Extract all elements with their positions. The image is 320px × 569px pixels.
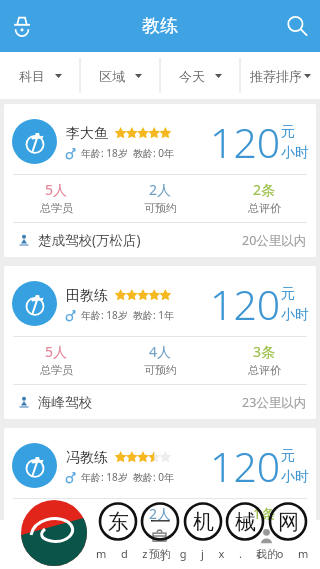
staticText: 总学员 [40, 201, 73, 215]
button[interactable]: 推荐排序 [240, 52, 320, 99]
staticText: 年龄: 18岁 教龄: 1年 [81, 308, 174, 322]
staticText: 总评价 [248, 525, 281, 539]
staticText: 120 [210, 438, 281, 494]
staticText: 预约 [149, 547, 171, 561]
staticText: 机 [193, 509, 214, 535]
staticText: 李大鱼 [66, 125, 108, 143]
staticText: 一 [150, 509, 171, 535]
button[interactable]: 教练 [0, 520, 106, 569]
staticText: 2人 [149, 504, 172, 523]
staticText: 总学员 [40, 525, 73, 539]
button[interactable]: 预约 [106, 520, 213, 569]
button[interactable]: 2人 [108, 499, 212, 546]
staticText: 网 [278, 509, 299, 535]
staticText: 5人 [45, 342, 68, 361]
staticText: 东 [108, 509, 129, 535]
button[interactable]: 区域 [80, 52, 160, 99]
button[interactable]: 5人 [4, 337, 108, 384]
staticText: 可预约 [144, 201, 177, 215]
staticText: 小时 [281, 306, 309, 324]
button[interactable]: 2人 [4, 499, 108, 546]
staticText: m d z j g j x . c o m [96, 546, 315, 561]
staticText: 推荐排序 [250, 68, 302, 84]
button[interactable]: 2条 [212, 175, 316, 222]
staticText: 冯教练 [66, 449, 108, 467]
staticText: 宏达驾校 [38, 550, 92, 567]
button[interactable]: 5人 [4, 175, 108, 222]
button[interactable]: 今天 [160, 52, 240, 99]
staticText: 总评价 [248, 363, 281, 377]
button[interactable]: 李大鱼 [4, 104, 316, 257]
staticText: 20公里以内 [242, 232, 307, 249]
button[interactable]: 田教练 [4, 266, 316, 419]
button[interactable]: 科目 [0, 52, 80, 99]
staticText: 2人 [45, 504, 68, 523]
button[interactable]: Profile [5, 9, 39, 43]
staticText: 科目 [19, 68, 45, 84]
staticText: 可预约 [144, 363, 177, 377]
staticText: 1条 [253, 504, 276, 523]
button[interactable]: 4人 [108, 337, 212, 384]
button[interactable]: Search [280, 9, 314, 43]
staticText: 我的 [256, 547, 278, 561]
staticText: 海峰驾校 [38, 394, 92, 411]
staticText: 总评价 [248, 201, 281, 215]
staticText: 120 [210, 276, 281, 332]
staticText: 小时 [281, 144, 309, 162]
staticText: 年龄: 18岁 教龄: 0年 [81, 470, 174, 484]
staticText: 2条 [253, 180, 276, 199]
staticText: 教练 [142, 15, 178, 38]
button[interactable]: 我的 [213, 520, 320, 569]
staticText: 田教练 [66, 287, 108, 305]
staticText: 械 [235, 509, 256, 535]
staticText: 小时 [281, 468, 309, 486]
button[interactable]: 2人 [108, 175, 212, 222]
staticText: 今天 [179, 68, 205, 84]
button[interactable]: 冯教练 [4, 428, 316, 569]
staticText: 元 [281, 285, 295, 303]
staticText: 120 [210, 114, 281, 170]
staticText: 元 [281, 123, 295, 141]
staticText: 总学员 [40, 363, 73, 377]
staticText: 3条 [253, 342, 276, 361]
staticText: 4人 [149, 342, 172, 361]
staticText: 楚成驾校(万松店) [38, 231, 141, 249]
button[interactable]: 1条 [212, 499, 316, 546]
staticText: 区域 [99, 68, 125, 84]
staticText: 15公里以内 [242, 550, 307, 567]
staticText: 年龄: 18岁 教龄: 0年 [81, 146, 174, 160]
staticText: 5人 [45, 180, 68, 199]
staticText: 23公里以内 [242, 394, 307, 411]
staticText: 可预约 [144, 525, 177, 539]
staticText: 元 [281, 447, 295, 465]
button[interactable]: 3条 [212, 337, 316, 384]
staticText: 2人 [149, 180, 172, 199]
